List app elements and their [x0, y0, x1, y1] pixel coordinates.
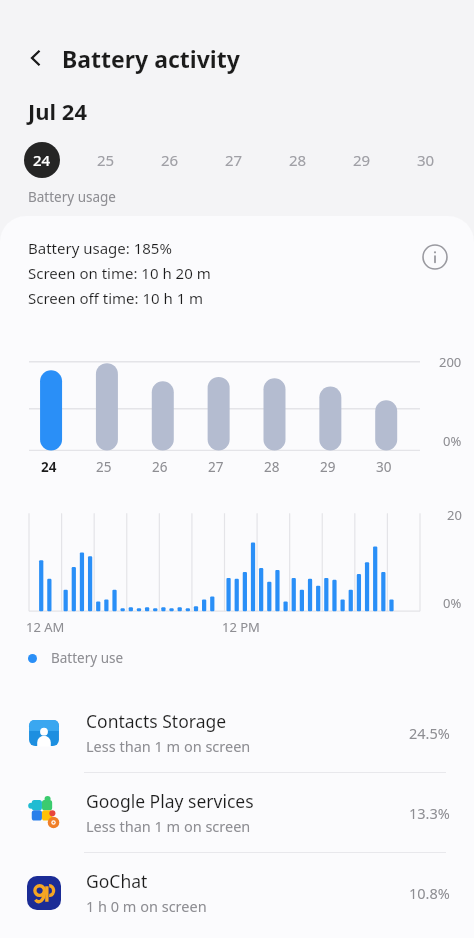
staticText: 25: [96, 458, 112, 474]
staticText: 24.5%: [409, 723, 450, 743]
staticText: 20: [447, 506, 462, 524]
staticText: 1 h 0 m on screen: [86, 896, 207, 916]
staticText: 25: [97, 150, 115, 170]
button[interactable]: 30: [408, 138, 472, 182]
staticText: Battery use: [51, 649, 124, 667]
staticText: Screen off time: 10 h 1 m: [28, 288, 204, 308]
button[interactable]: 28: [280, 138, 344, 182]
button[interactable]: 26: [152, 138, 216, 182]
staticText: Less than 1 m on screen: [86, 816, 251, 836]
staticText: 0%: [443, 594, 462, 612]
staticText: Battery usage: [28, 188, 116, 206]
button[interactable]: More information: [418, 240, 452, 274]
staticText: Google Play services: [86, 789, 254, 813]
button[interactable]: Back: [14, 36, 58, 80]
button[interactable]: Contacts Storage: [0, 693, 474, 772]
button[interactable]: 24: [24, 138, 88, 182]
button[interactable]: Google Play services: [0, 773, 474, 852]
staticText: 26: [152, 458, 168, 474]
staticText: 28: [264, 458, 280, 474]
staticText: 12 PM: [222, 618, 260, 636]
staticText: 24: [41, 458, 57, 474]
button[interactable]: 29: [344, 138, 408, 182]
button[interactable]: GoChat: [0, 853, 474, 932]
staticText: 28: [289, 150, 307, 170]
staticText: Jul 24: [28, 96, 88, 126]
staticText: 30: [376, 458, 392, 474]
staticText: 200: [439, 353, 462, 371]
staticText: 30: [417, 150, 435, 170]
staticText: 10.8%: [409, 883, 450, 903]
staticText: 12 AM: [26, 618, 65, 636]
staticText: Contacts Storage: [86, 709, 227, 733]
staticText: Battery usage: 185%: [28, 238, 172, 258]
staticText: 27: [208, 458, 224, 474]
staticText: 13.3%: [409, 803, 450, 823]
button[interactable]: 25: [88, 138, 152, 182]
staticText: Battery activity: [62, 43, 240, 74]
staticText: 29: [320, 458, 336, 474]
staticText: 29: [353, 150, 371, 170]
staticText: 24: [33, 150, 51, 170]
staticText: 27: [225, 150, 243, 170]
staticText: Less than 1 m on screen: [86, 736, 251, 756]
staticText: 26: [161, 150, 179, 170]
staticText: GoChat: [86, 869, 148, 893]
staticText: 0%: [443, 432, 462, 450]
button[interactable]: 27: [216, 138, 280, 182]
staticText: Screen on time: 10 h 20 m: [28, 263, 211, 283]
